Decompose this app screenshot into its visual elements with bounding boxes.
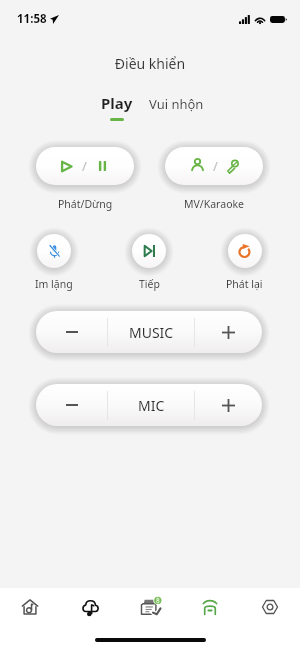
- staticText: Điều khiển: [0, 54, 300, 73]
- staticText: Vui nhộn: [149, 95, 204, 113]
- button[interactable]: MV / Karaoke: [165, 147, 263, 185]
- button[interactable]: Decrease MIC: [36, 384, 107, 426]
- button[interactable]: Increase MUSIC: [195, 311, 262, 353]
- staticText: Tiếp: [139, 277, 160, 291]
- button[interactable]: MIC: [108, 384, 194, 426]
- button[interactable]: Mute: [37, 234, 71, 268]
- button[interactable]: Replay: [228, 234, 262, 268]
- button[interactable]: Play: [101, 93, 133, 121]
- button[interactable]: Remote: [180, 588, 240, 626]
- staticText: /: [82, 157, 87, 175]
- button[interactable]: Vui nhộn: [149, 95, 204, 113]
- staticText: MUSIC: [129, 323, 174, 342]
- button[interactable]: Playlist: [120, 588, 180, 626]
- button[interactable]: Home: [0, 588, 60, 626]
- staticText: Im lặng: [35, 277, 73, 291]
- button[interactable]: Play / Pause: [36, 147, 134, 185]
- button[interactable]: Settings: [240, 588, 300, 626]
- staticText: Play: [101, 93, 133, 113]
- staticText: Phát lại: [226, 277, 263, 291]
- staticText: /: [213, 157, 218, 175]
- staticText: MV/Karaoke: [184, 197, 245, 211]
- button[interactable]: Cloud music: [60, 588, 120, 626]
- staticText: Phát/Dừng: [58, 197, 113, 211]
- staticText: 11:58: [17, 11, 47, 27]
- button[interactable]: Increase MIC: [195, 384, 262, 426]
- button[interactable]: Decrease MUSIC: [36, 311, 107, 353]
- staticText: MIC: [138, 396, 165, 415]
- button[interactable]: Next: [132, 234, 166, 268]
- button[interactable]: MUSIC: [108, 311, 194, 353]
